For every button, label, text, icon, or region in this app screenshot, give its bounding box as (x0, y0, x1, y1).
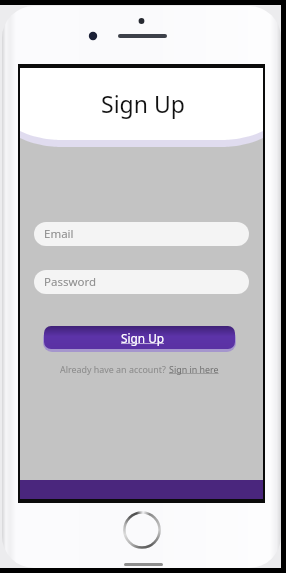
staticText: Email (44, 226, 74, 242)
button[interactable]: Home (123, 511, 161, 549)
staticText: Sign in here (169, 363, 219, 375)
staticText: Sign Up (121, 330, 165, 346)
button[interactable]: Email (34, 222, 249, 246)
staticText: Already have an account? (60, 363, 169, 375)
button[interactable]: Sign Up (44, 326, 235, 349)
button[interactable]: Password (34, 270, 249, 294)
button[interactable]: Sign in here (169, 363, 219, 375)
staticText: Sign Up (101, 88, 185, 119)
staticText: Password (44, 274, 97, 290)
